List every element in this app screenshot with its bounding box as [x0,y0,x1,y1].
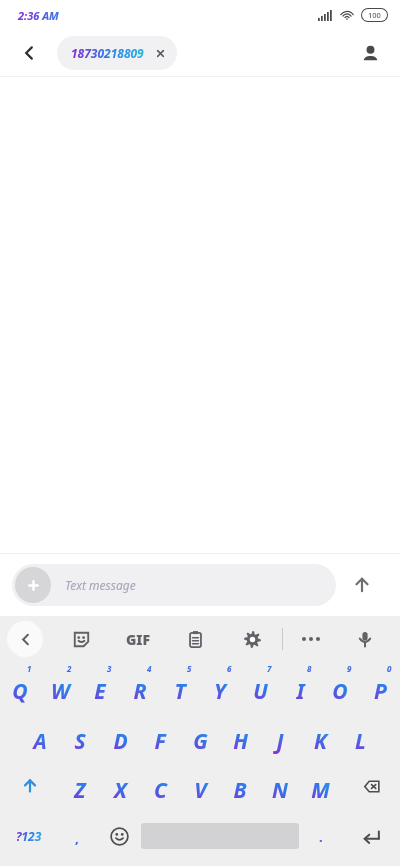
button[interactable]: Shift [0,762,60,810]
button[interactable]: Contact details [352,35,388,71]
staticText: E [94,677,106,706]
staticText: B [233,776,247,805]
staticText: 9 [347,663,352,674]
button[interactable]: X [100,762,140,810]
button[interactable]: F [140,712,180,762]
button[interactable]: Back [10,34,48,72]
button[interactable]: 0 [360,662,400,712]
button[interactable]: 6 [200,662,240,712]
staticText: 6 [227,663,232,674]
staticText: W [51,677,70,706]
button[interactable]: V [180,762,220,810]
staticText: 7 [267,663,272,674]
button[interactable]: Enter [343,810,400,862]
button[interactable]: . [299,810,343,862]
button[interactable]: Settings [232,619,272,659]
button[interactable]: Attach [12,564,336,606]
staticText: S [74,727,86,756]
staticText: Z [74,776,86,805]
staticText: 5 [187,663,192,674]
staticText: F [154,727,166,756]
staticText: Q [12,677,28,706]
staticText: V [194,776,207,805]
button[interactable]: S [60,712,100,762]
staticText: 100 [368,10,381,20]
button[interactable]: 1 [0,662,40,712]
button[interactable]: ?123 [0,810,57,862]
button[interactable]: M [300,762,340,810]
staticText: M [311,776,330,805]
button[interactable]: 4 [120,662,160,712]
button[interactable]: D [100,712,140,762]
button[interactable]: Backspace [340,762,400,810]
staticText: A [33,727,47,756]
button[interactable]: 9 [320,662,360,712]
button[interactable]: 5 [160,662,200,712]
button[interactable]: C [140,762,180,810]
staticText: C [154,776,167,805]
staticText: Text message [65,577,136,593]
button[interactable]: Stickers [61,619,101,659]
staticText: P [374,677,387,706]
button[interactable]: 3 [80,662,120,712]
staticText: Y [214,677,226,706]
staticText: 18730218809 [71,45,144,61]
button[interactable]: Clipboard [175,619,215,659]
staticText: N [272,776,288,805]
staticText: H [233,727,248,756]
staticText: T [174,677,186,706]
button[interactable]: Emoji [97,810,141,862]
button[interactable]: G [180,712,220,762]
staticText: GIF [126,630,151,649]
button[interactable]: 7 [240,662,280,712]
staticText: 0 [387,663,392,674]
button[interactable]: N [260,762,300,810]
staticText: G [193,727,208,756]
staticText: I [296,677,305,706]
staticText: ?123 [16,828,42,844]
staticText: U [253,677,268,706]
button[interactable]: , [57,810,97,862]
staticText: . [319,828,323,846]
staticText: 2:36 AM [18,8,59,23]
button[interactable]: A [20,712,60,762]
staticText: 2 [67,663,72,674]
staticText: R [133,677,147,706]
button[interactable]: H [220,712,260,762]
button[interactable]: B [220,762,260,810]
staticText: L [355,727,366,756]
staticText: J [276,727,284,756]
button[interactable]: Back [7,621,43,657]
staticText: O [332,677,348,706]
button[interactable]: 2 [40,662,80,712]
button[interactable]: 8 [280,662,320,712]
button[interactable]: K [300,712,340,762]
staticText: 8 [307,663,312,674]
staticText: 3 [107,663,112,674]
button[interactable]: More options [291,619,331,659]
staticText: , [75,829,79,847]
button[interactable]: Send [336,559,388,611]
button[interactable]: 18730218809 [57,36,177,70]
button[interactable]: Voice input [345,619,385,659]
staticText: D [113,727,128,756]
staticText: K [314,727,327,756]
staticText: 4 [147,663,152,674]
button[interactable]: GIF [118,619,158,659]
button[interactable]: J [260,712,300,762]
button[interactable]: Attach [15,567,51,603]
staticText: 1 [27,663,32,674]
staticText: X [114,776,127,805]
button[interactable]: L [340,712,380,762]
button[interactable]: Z [60,762,100,810]
